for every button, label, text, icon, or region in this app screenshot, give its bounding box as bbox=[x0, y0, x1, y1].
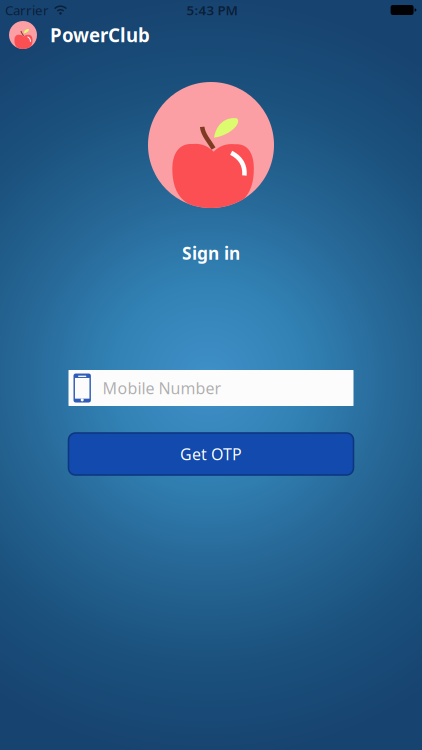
staticText: Carrier bbox=[5, 1, 49, 19]
staticText: Mobile Number bbox=[102, 377, 221, 399]
button[interactable]: Mobile Number bbox=[68, 370, 353, 406]
staticText: PowerClub bbox=[50, 23, 150, 47]
button[interactable]: PowerClub bbox=[0, 18, 422, 52]
staticText: 5:43 PM bbox=[186, 1, 237, 19]
button[interactable]: Get OTP bbox=[68, 433, 353, 475]
staticText: Sign in bbox=[182, 241, 240, 264]
staticText: Get OTP bbox=[180, 443, 242, 465]
